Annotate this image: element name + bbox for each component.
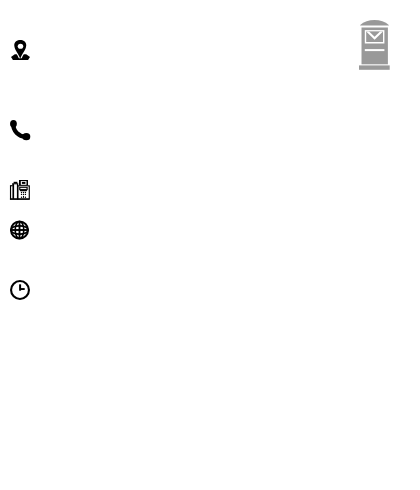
button[interactable]: Opening hours xyxy=(10,280,30,300)
button[interactable]: Phone xyxy=(10,120,30,140)
button[interactable]: Mailbox xyxy=(359,20,390,70)
button[interactable]: Fax xyxy=(10,180,30,200)
button[interactable]: Website xyxy=(10,220,29,240)
button[interactable]: Address xyxy=(11,40,30,60)
